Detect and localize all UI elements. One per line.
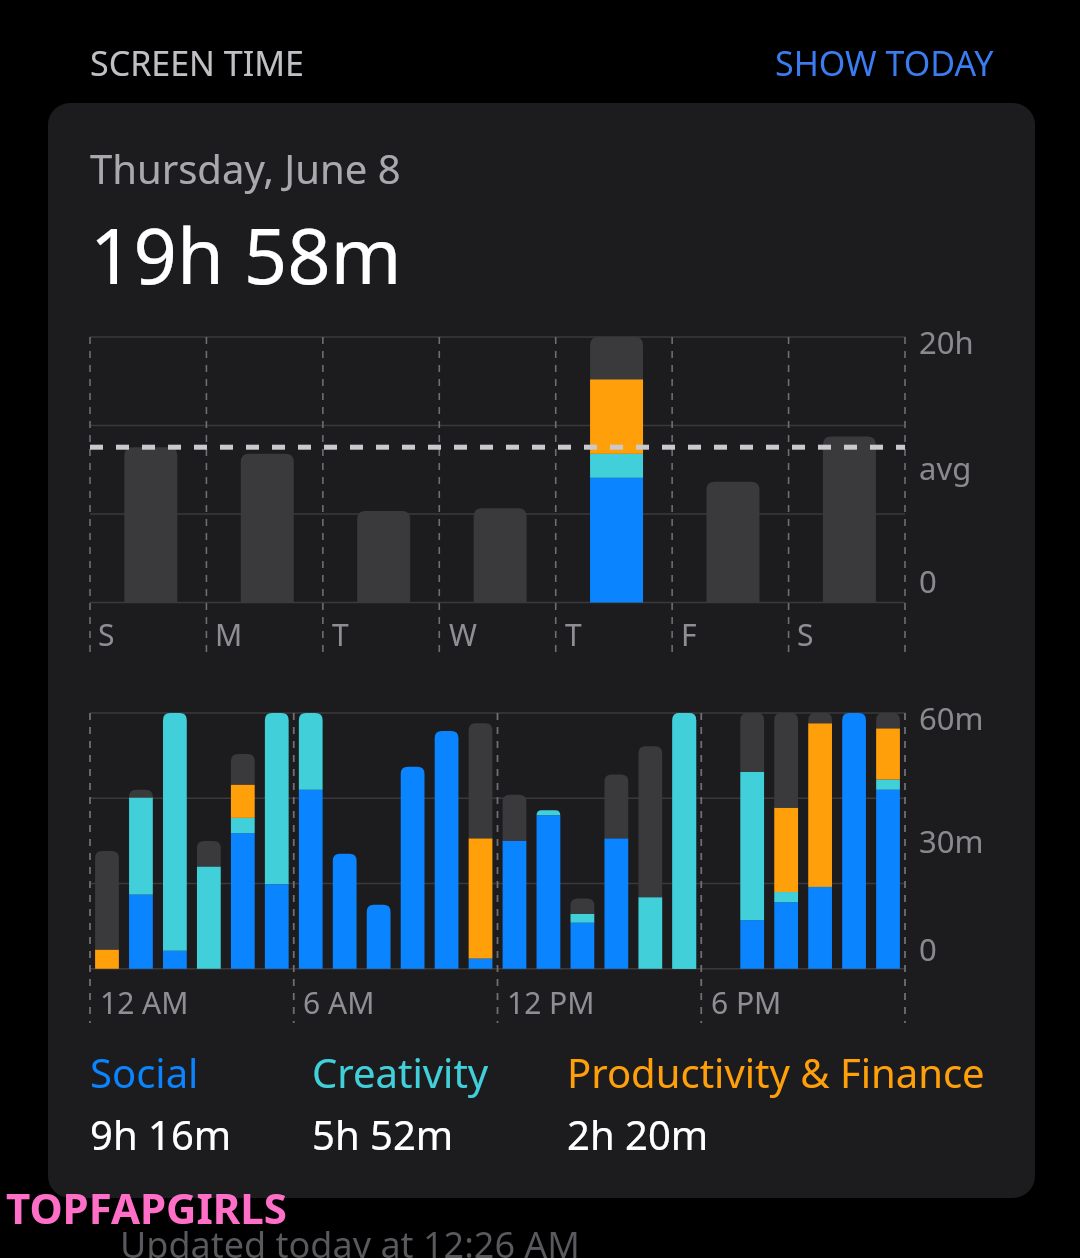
staticText: Updated today at 12:26 AM — [120, 1220, 581, 1258]
staticText: Creativity — [312, 1045, 489, 1099]
staticText: 6 PM — [711, 982, 782, 1023]
button[interactable]: Creativity — [312, 1045, 567, 1161]
staticText: 30m — [919, 820, 984, 862]
staticText: 19h 58m — [90, 203, 402, 307]
staticText: SCREEN TIME — [90, 40, 304, 86]
staticText: 20h — [919, 321, 974, 363]
staticText: Thursday, June 8 — [90, 141, 401, 195]
staticText: 12 AM — [100, 982, 189, 1023]
button[interactable]: SHOW TODAY — [775, 40, 994, 86]
staticText: T — [332, 614, 349, 655]
staticText: S — [797, 614, 814, 655]
staticText: T — [565, 614, 582, 655]
staticText: W — [449, 614, 477, 655]
staticText: M — [215, 614, 243, 655]
staticText: 0 — [919, 560, 937, 602]
button[interactable]: Thursday, June 8 — [48, 103, 1035, 1198]
staticText: 60m — [919, 697, 984, 739]
staticText: Social — [90, 1045, 199, 1099]
staticText: 9h 16m — [90, 1107, 232, 1161]
staticText: Productivity & Finance — [567, 1045, 985, 1099]
staticText: F — [681, 614, 697, 655]
staticText: 12 PM — [507, 982, 595, 1023]
button[interactable]: Productivity & Finance — [567, 1045, 1005, 1161]
staticText: 2h 20m — [567, 1107, 709, 1161]
staticText: 6 AM — [303, 982, 375, 1023]
staticText: 0 — [919, 928, 937, 970]
staticText: S — [98, 614, 115, 655]
staticText: 5h 52m — [312, 1107, 454, 1161]
staticText: SHOW TODAY — [775, 40, 994, 86]
staticText: avg — [919, 447, 972, 489]
button[interactable]: Social — [90, 1045, 312, 1161]
staticText: TOPFAPGIRLS — [6, 1179, 287, 1236]
